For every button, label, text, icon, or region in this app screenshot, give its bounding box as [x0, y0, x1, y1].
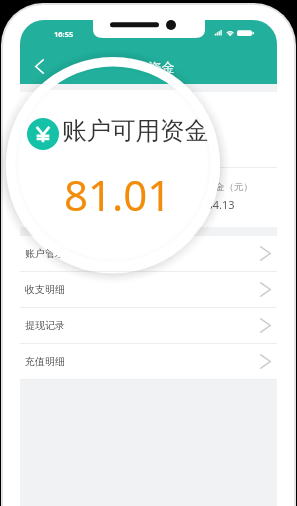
staticText: 账户可用资金 [52, 124, 130, 140]
button[interactable]: 提现记录 [20, 308, 277, 344]
staticText: 账户可用资金 [62, 115, 209, 146]
staticText: 累计收益金（元） [177, 181, 253, 193]
button[interactable]: 账户管理 [20, 236, 277, 272]
staticText: 提现记录 [25, 319, 65, 332]
button[interactable]: 充值明细 [20, 344, 277, 380]
staticText: 16:55 [54, 29, 74, 39]
staticText: 账户管理 [25, 247, 65, 260]
staticText: 冻结金额（元） [40, 181, 107, 193]
staticText: 充值明细 [25, 355, 65, 368]
button[interactable]: 收支明细 [20, 272, 277, 308]
staticText: 我的资金 [20, 59, 277, 75]
staticText: 81.01 [64, 166, 172, 223]
staticText: 收支明细 [25, 283, 65, 296]
staticText: 1,234.13 [191, 197, 235, 212]
staticText: 81.01 [54, 136, 111, 166]
button[interactable]: Back [24, 51, 54, 82]
